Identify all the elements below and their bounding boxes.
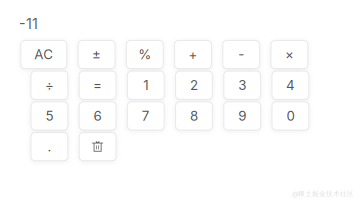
button[interactable]: 0 xyxy=(272,102,309,130)
button[interactable]: AC xyxy=(21,40,67,69)
staticText: 2 xyxy=(190,77,198,93)
staticText: 5 xyxy=(45,108,53,124)
button[interactable]: 7 xyxy=(127,102,164,130)
button[interactable]: ÷ xyxy=(31,71,68,99)
staticText: + xyxy=(188,46,197,63)
button[interactable]: 5 xyxy=(31,102,68,130)
button[interactable]: 1 xyxy=(127,71,164,99)
button[interactable]: % xyxy=(126,40,163,69)
button[interactable]: × xyxy=(271,40,308,69)
staticText: ± xyxy=(92,46,101,63)
button[interactable]: Delete xyxy=(79,132,116,161)
button[interactable]: 9 xyxy=(224,102,261,130)
button[interactable]: + xyxy=(175,40,211,69)
staticText: 8 xyxy=(190,108,198,124)
staticText: 9 xyxy=(238,108,246,124)
staticText: -11 xyxy=(19,15,38,32)
staticText: 0 xyxy=(286,108,294,124)
button[interactable]: . xyxy=(31,132,68,161)
button[interactable]: 8 xyxy=(176,102,212,130)
staticText: ÷ xyxy=(45,77,54,93)
staticText: 6 xyxy=(94,108,102,124)
staticText: 4 xyxy=(286,77,295,93)
staticText: × xyxy=(285,46,294,63)
staticText: % xyxy=(138,46,151,63)
staticText: @稀土掘金技术社区 xyxy=(292,190,354,198)
button[interactable]: 6 xyxy=(79,102,116,130)
staticText: AC xyxy=(34,46,53,63)
button[interactable]: = xyxy=(79,71,116,99)
staticText: 7 xyxy=(142,108,150,124)
button[interactable]: 3 xyxy=(224,71,261,99)
staticText: 3 xyxy=(238,77,246,93)
staticText: - xyxy=(238,46,244,63)
button[interactable]: 2 xyxy=(176,71,212,99)
staticText: . xyxy=(47,139,51,155)
button[interactable]: 4 xyxy=(272,71,309,99)
staticText: 1 xyxy=(143,77,148,93)
button[interactable]: ± xyxy=(78,40,115,69)
button[interactable]: - xyxy=(223,40,260,69)
staticText: = xyxy=(93,77,102,93)
